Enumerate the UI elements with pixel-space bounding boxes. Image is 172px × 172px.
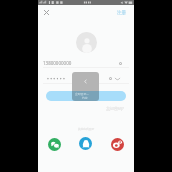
button[interactable]: Weibo login	[111, 138, 124, 151]
staticText: 其他方式登录	[78, 127, 95, 130]
button[interactable]: 忘记密码?	[106, 106, 124, 111]
button[interactable]: QQ login	[79, 137, 92, 150]
staticText: 注册	[117, 10, 126, 16]
button[interactable]: Show password	[112, 73, 122, 83]
staticText: 约定	[82, 96, 88, 100]
button[interactable]: Clear password	[105, 73, 115, 83]
button[interactable]: Clear phone number	[115, 58, 125, 68]
staticText: 立即登录…	[75, 92, 89, 96]
button[interactable]: Close	[41, 7, 52, 18]
button[interactable]	[46, 91, 126, 101]
button[interactable]: 注册	[114, 8, 128, 18]
staticText: 13800000000	[43, 60, 72, 66]
button[interactable]: WeChat login	[48, 138, 61, 151]
staticText: • • • • • •	[47, 76, 65, 83]
